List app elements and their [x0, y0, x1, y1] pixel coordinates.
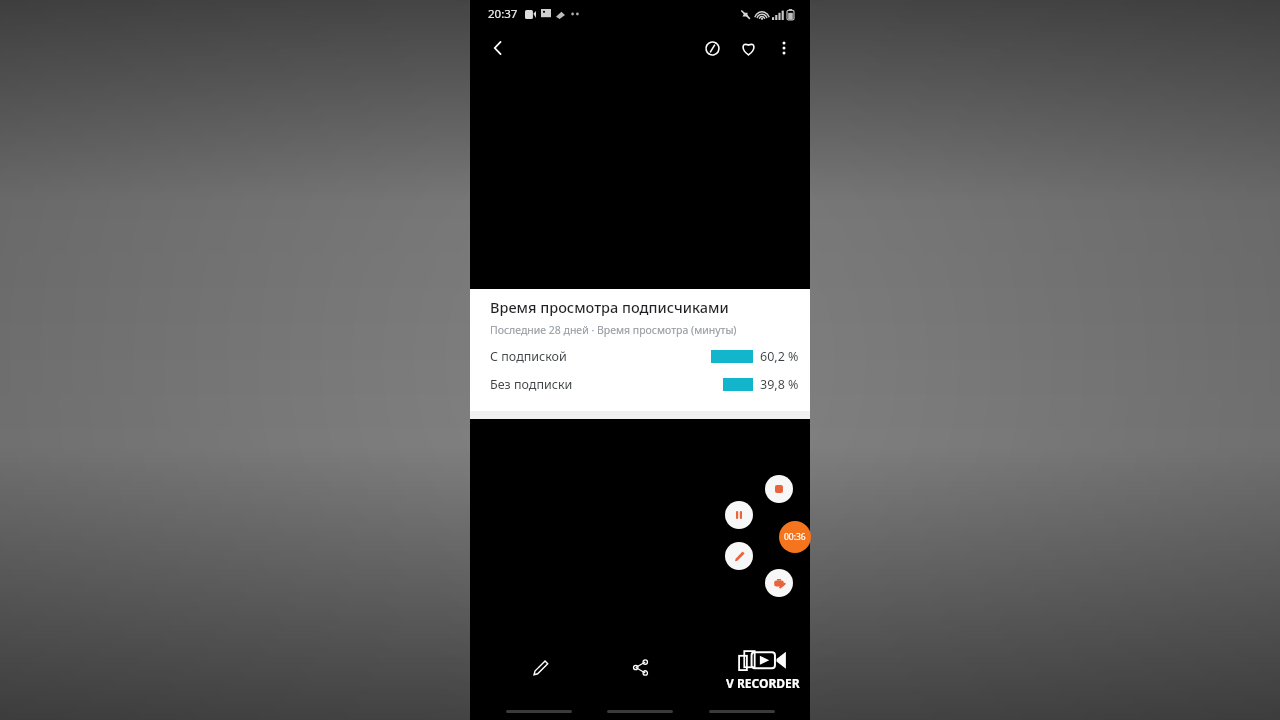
staticText: Без подписки — [490, 376, 573, 393]
staticText: 60,2 % — [760, 348, 799, 365]
staticText: V RECORDER — [726, 675, 800, 691]
button[interactable]: Без подписки — [470, 376, 810, 393]
staticText: Последние 28 дней · Время просмотра (мин… — [490, 323, 737, 337]
button[interactable]: Edit — [523, 650, 557, 684]
staticText: С подпиской — [490, 348, 567, 365]
staticText: 39,8 % — [760, 376, 799, 393]
staticText: 00:36 — [784, 531, 806, 543]
button[interactable]: Like — [730, 30, 766, 66]
button[interactable]: Cast — [694, 30, 730, 66]
button[interactable]: Pause recording — [725, 501, 753, 529]
button[interactable]: Back — [480, 30, 516, 66]
staticText: Время просмотра подписчиками — [490, 297, 729, 317]
button[interactable]: Tools — [765, 569, 793, 597]
button[interactable]: Share — [623, 650, 657, 684]
button[interactable]: Draw — [725, 542, 753, 570]
button[interactable]: С подпиской — [470, 348, 810, 365]
button[interactable]: Stop recording — [765, 475, 793, 503]
button[interactable]: Recording timer 00:36 — [779, 521, 811, 553]
staticText: 20:37 — [488, 6, 518, 22]
button[interactable]: More options — [766, 30, 802, 66]
